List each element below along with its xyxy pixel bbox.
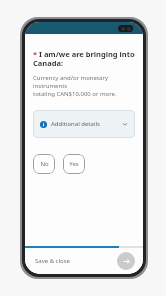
button[interactable]: Additional details — [33, 110, 135, 138]
staticText: * I am/we are bringing into Canada: — [33, 49, 135, 68]
staticText: Save & close — [35, 257, 70, 265]
button[interactable]: Save & close — [33, 254, 72, 268]
button[interactable]: No — [33, 154, 55, 174]
button[interactable]: Yes — [63, 154, 85, 174]
staticText: Yes — [69, 160, 79, 168]
staticText: Currency and/or monetary instruments tot… — [33, 74, 135, 98]
button[interactable]: Next — [117, 252, 135, 270]
staticText: Additional details — [51, 120, 100, 128]
staticText: No — [40, 160, 49, 168]
